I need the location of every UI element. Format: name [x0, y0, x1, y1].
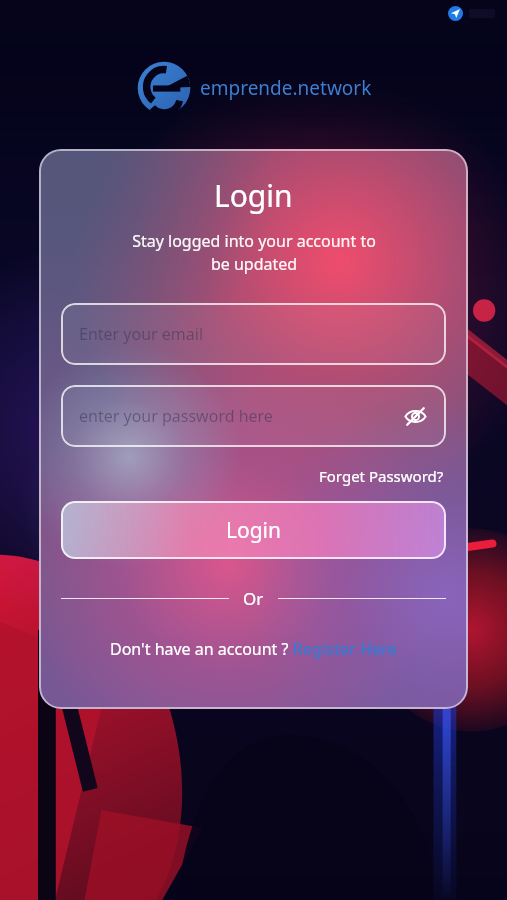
other: Location active	[448, 6, 463, 21]
staticText: Or	[243, 587, 264, 610]
staticText: Login	[226, 516, 282, 545]
staticText: Enter your email	[79, 323, 204, 345]
button[interactable]: Don't have an account ? Register Here	[61, 638, 446, 660]
button[interactable]: enter your password here	[61, 385, 446, 447]
button[interactable]: Login	[61, 501, 446, 559]
staticText: enter your password here	[79, 405, 273, 427]
button[interactable]: Show password	[396, 397, 434, 435]
staticText: Login	[214, 175, 293, 216]
staticText: Forget Password?	[319, 466, 444, 486]
staticText: Don't have an account ? Register Here	[110, 638, 397, 660]
button[interactable]: Enter your email	[61, 303, 446, 365]
staticText: Stay logged into your account to be upda…	[132, 230, 376, 275]
staticText: emprende.network	[200, 75, 372, 101]
button[interactable]: Forget Password?	[317, 463, 446, 489]
